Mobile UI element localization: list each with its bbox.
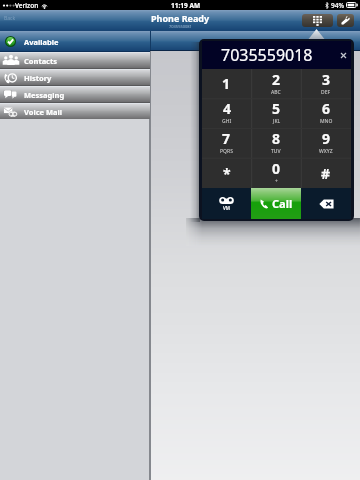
staticText: Voice Mail — [24, 107, 62, 117]
button[interactable]: 8 — [251, 128, 301, 158]
staticText: 7035550081 — [169, 24, 192, 29]
button[interactable]: 0 — [251, 158, 301, 188]
staticText: 0 — [272, 159, 281, 178]
button[interactable]: 9 — [301, 128, 351, 158]
staticText: 11:19 AM — [171, 1, 201, 10]
button[interactable]: Call — [251, 188, 301, 219]
staticText: 7 — [222, 129, 231, 148]
button[interactable]: Clear — [336, 48, 351, 63]
staticText: 7035559018 — [221, 44, 313, 66]
button[interactable]: Contacts — [0, 52, 150, 68]
staticText: JKL — [273, 118, 281, 125]
staticText: Messaging — [24, 90, 65, 100]
button[interactable]: Backspace — [301, 188, 351, 219]
staticText: 4 — [223, 99, 232, 118]
staticText: VM — [223, 205, 230, 211]
staticText: 8 — [272, 129, 281, 148]
staticText: WXYZ — [319, 148, 333, 155]
button[interactable]: Available — [0, 31, 150, 51]
staticText: Call — [272, 196, 293, 211]
button[interactable]: Messaging — [0, 86, 150, 102]
staticText: DEF — [321, 89, 331, 96]
button[interactable]: Keypad — [302, 14, 333, 27]
staticText: 9 — [322, 129, 331, 148]
button[interactable]: 4 — [202, 98, 251, 128]
staticText: # — [321, 164, 331, 183]
button[interactable]: # — [301, 158, 351, 188]
staticText: Verizon — [15, 1, 39, 10]
staticText: 2 — [272, 70, 281, 89]
button[interactable]: History — [0, 69, 150, 85]
button[interactable]: Voice Mail — [0, 103, 150, 119]
staticText: 94% — [331, 1, 344, 10]
button[interactable]: 7 — [202, 128, 251, 158]
staticText: + — [275, 178, 278, 185]
button[interactable]: * — [202, 158, 251, 188]
staticText: PQRS — [220, 148, 233, 155]
staticText: ABC — [271, 89, 281, 96]
staticText: Available — [24, 37, 59, 47]
staticText: History — [24, 73, 52, 83]
staticText: 3 — [322, 70, 331, 89]
button[interactable]: Voicemail — [202, 188, 251, 219]
staticText: GHI — [222, 118, 232, 125]
button[interactable]: 5 — [251, 98, 301, 128]
staticText: Phone Ready — [151, 12, 210, 24]
staticText: 6 — [322, 99, 331, 118]
staticText: Back — [4, 15, 16, 22]
button[interactable]: 3 — [301, 69, 351, 98]
staticText: 1 — [222, 74, 231, 93]
button[interactable]: Settings — [337, 14, 354, 27]
button[interactable]: 1 — [202, 69, 251, 98]
staticText: 5 — [272, 99, 281, 118]
staticText: Contacts — [24, 56, 58, 66]
staticText: MNO — [320, 118, 333, 125]
staticText: * — [223, 164, 231, 183]
staticText: TUV — [271, 148, 281, 155]
button[interactable]: 2 — [251, 69, 301, 98]
button[interactable]: 6 — [301, 98, 351, 128]
